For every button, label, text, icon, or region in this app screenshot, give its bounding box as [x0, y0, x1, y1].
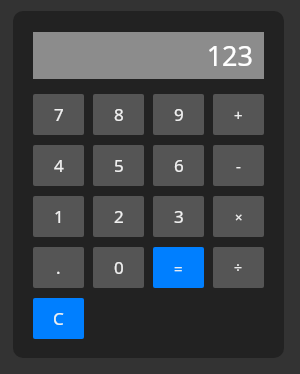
staticText: C: [53, 307, 64, 330]
button[interactable]: 123: [33, 32, 264, 79]
button[interactable]: 4: [33, 145, 84, 186]
button[interactable]: 7: [33, 94, 84, 135]
staticText: .: [56, 256, 61, 279]
staticText: 5: [114, 154, 124, 177]
staticText: 123: [206, 37, 253, 74]
staticText: 7: [54, 103, 64, 126]
button[interactable]: ÷: [213, 247, 264, 288]
staticText: ÷: [234, 258, 243, 277]
staticText: 3: [174, 205, 184, 228]
staticText: 9: [174, 103, 184, 126]
button[interactable]: 5: [93, 145, 144, 186]
staticText: 6: [174, 154, 184, 177]
button[interactable]: 0: [93, 247, 144, 288]
button[interactable]: .: [33, 247, 84, 288]
staticText: +: [234, 105, 243, 125]
button[interactable]: C: [33, 298, 84, 339]
button[interactable]: 3: [153, 196, 204, 237]
button[interactable]: ×: [213, 196, 264, 237]
staticText: =: [174, 258, 183, 278]
staticText: ×: [235, 208, 243, 226]
staticText: 8: [114, 103, 124, 126]
button[interactable]: 2: [93, 196, 144, 237]
staticText: 1: [54, 205, 64, 228]
button[interactable]: -: [213, 145, 264, 186]
staticText: -: [236, 156, 241, 176]
button[interactable]: +: [213, 94, 264, 135]
button[interactable]: 9: [153, 94, 204, 135]
button[interactable]: 1: [33, 196, 84, 237]
staticText: 4: [54, 154, 64, 177]
staticText: 0: [114, 256, 124, 279]
staticText: 2: [114, 205, 124, 228]
button[interactable]: 8: [93, 94, 144, 135]
button[interactable]: 6: [153, 145, 204, 186]
button[interactable]: =: [153, 247, 204, 288]
